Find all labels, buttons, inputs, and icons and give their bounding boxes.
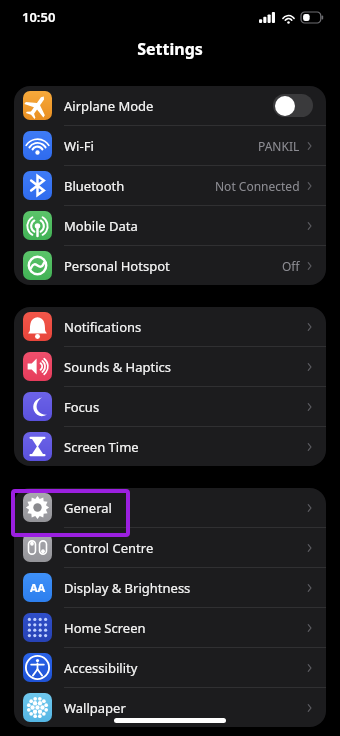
staticText: Focus [64,398,100,416]
staticText: Settings [137,38,203,60]
button[interactable]: Airplane Mode [14,86,326,125]
other: General highlighted [13,491,128,535]
staticText: AA [30,580,46,595]
button[interactable]: Screen Time [14,427,326,466]
button[interactable]: Personal Hotspot [14,246,326,285]
staticText: Accessibility [64,659,138,677]
staticText: General [64,499,112,517]
button[interactable]: Bluetooth [14,166,326,205]
button[interactable]: Mobile Data [14,206,326,245]
staticText: Not Connected [215,178,300,194]
staticText: Personal Hotspot [64,257,170,275]
button[interactable]: Wi-Fi [14,126,326,165]
staticText: Wi-Fi [64,137,94,155]
button[interactable]: General [14,488,326,527]
button[interactable]: AA [14,568,326,607]
staticText: Airplane Mode [64,97,154,115]
staticText: 10:50 [22,8,56,26]
button[interactable]: Wallpaper [14,688,326,727]
staticText: Home Screen [64,619,146,637]
button[interactable]: Home Screen [14,608,326,647]
staticText: Screen Time [64,438,139,456]
button[interactable]: Control Centre [14,528,326,567]
staticText: Sounds & Haptics [64,358,172,376]
staticText: Display & Brightness [64,579,191,597]
staticText: Notifications [64,318,142,336]
button[interactable]: Focus [14,387,326,426]
staticText: Wallpaper [64,699,126,717]
staticText: Mobile Data [64,217,138,235]
button[interactable]: Notifications [14,307,326,346]
staticText: Control Centre [64,539,154,557]
button[interactable]: Sounds & Haptics [14,347,326,386]
staticText: Off [282,258,300,274]
button[interactable]: Accessibility [14,648,326,687]
staticText: PANKIL [258,138,300,154]
staticText: Bluetooth [64,177,125,195]
